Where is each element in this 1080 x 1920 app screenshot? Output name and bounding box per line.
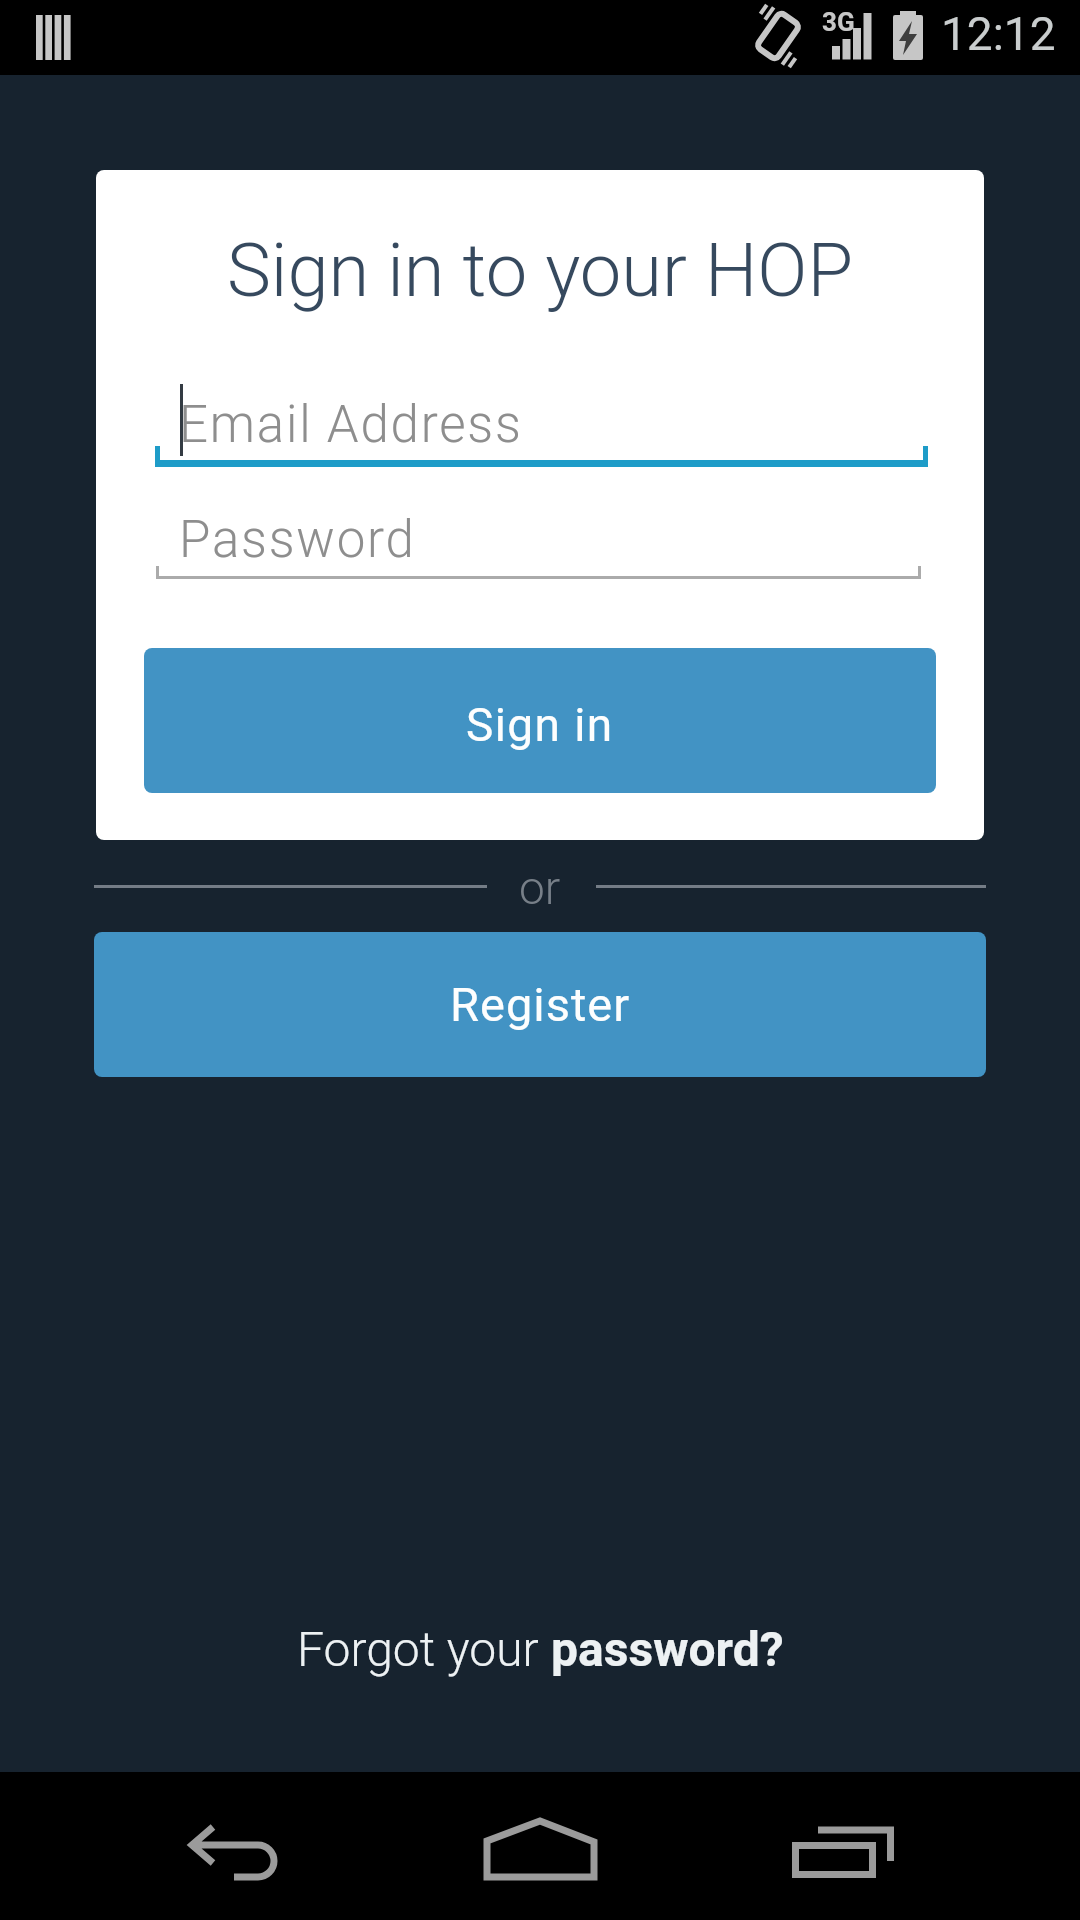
staticText: Sign in to your HOP (227, 227, 853, 314)
staticText: password? (551, 1621, 784, 1677)
button[interactable] (470, 1772, 610, 1920)
staticText: Forgot your (297, 1621, 551, 1677)
staticText: 12:12 (941, 7, 1056, 61)
button[interactable] (170, 1772, 310, 1920)
staticText: Register (450, 977, 631, 1032)
button[interactable]: Forgot your (0, 1617, 1080, 1681)
staticText: Email Address (179, 395, 523, 455)
staticText: Password (179, 510, 416, 570)
staticText: 3G (822, 7, 855, 37)
button[interactable]: Sign in (144, 648, 936, 793)
button[interactable]: Register (94, 932, 986, 1077)
staticText: or (519, 861, 561, 915)
staticText: Sign in (466, 698, 614, 752)
button[interactable] (770, 1772, 910, 1920)
